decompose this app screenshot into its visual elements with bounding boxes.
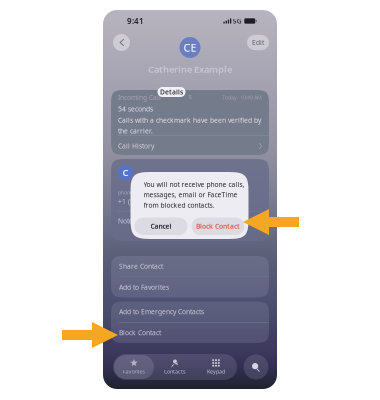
staticText: Calls with a checkmark have been verifie… [118, 116, 261, 125]
button[interactable]: Favorites [113, 354, 154, 380]
button[interactable]: Documents [188, 87, 222, 97]
staticText: the carrier. [118, 127, 153, 135]
button[interactable]: Edit [247, 35, 269, 50]
staticText: Documents [188, 83, 222, 101]
staticText: Add to Favorites [119, 283, 169, 292]
staticText: Catherine Example [148, 63, 232, 75]
staticText: You will not receive phone calls, [143, 180, 244, 189]
staticText: CE [183, 40, 196, 55]
staticText: 54 seconds [118, 104, 153, 113]
button[interactable]: Keypad [195, 354, 236, 380]
staticText: messages, email or FaceTime [143, 190, 237, 199]
button[interactable]: Cancel [134, 217, 187, 235]
staticText: 5G [233, 17, 242, 25]
button[interactable]: Block Contact [191, 217, 244, 235]
button[interactable]: Add to Favorites [111, 277, 269, 297]
staticText: Add to Emergency Contacts [119, 307, 204, 316]
button[interactable]: Contacts [154, 354, 195, 380]
staticText: from blocked contacts. [143, 201, 214, 210]
staticText: Edit [252, 38, 264, 47]
button[interactable]: Block Contact [111, 322, 269, 343]
staticText: Today · 10:49 AM [222, 94, 262, 101]
button[interactable]: Share Contact [111, 256, 269, 276]
staticText: Details [160, 88, 183, 96]
staticText: +1 (555) 555-1234 [118, 197, 176, 206]
staticText: Call History [118, 141, 154, 150]
button[interactable]: Back [111, 32, 132, 53]
staticText: Block Contact [196, 222, 240, 231]
staticText: C [122, 166, 128, 179]
staticText: Block Contact [119, 328, 161, 337]
staticText: Notes [118, 216, 136, 225]
staticText: Keypad [207, 368, 225, 375]
button[interactable]: Details [157, 87, 185, 97]
button[interactable]: Add to Emergency Contacts [111, 301, 269, 322]
staticText: 9:41 [127, 16, 144, 26]
staticText: Favorites [122, 368, 145, 375]
button[interactable]: Search [243, 354, 269, 380]
staticText: phone [118, 189, 133, 196]
staticText: Share Contact [119, 262, 163, 271]
staticText: Incoming Call [118, 93, 161, 102]
staticText: Contacts [164, 368, 186, 375]
staticText: Cancel [150, 222, 171, 231]
button[interactable]: Call History [111, 136, 269, 156]
